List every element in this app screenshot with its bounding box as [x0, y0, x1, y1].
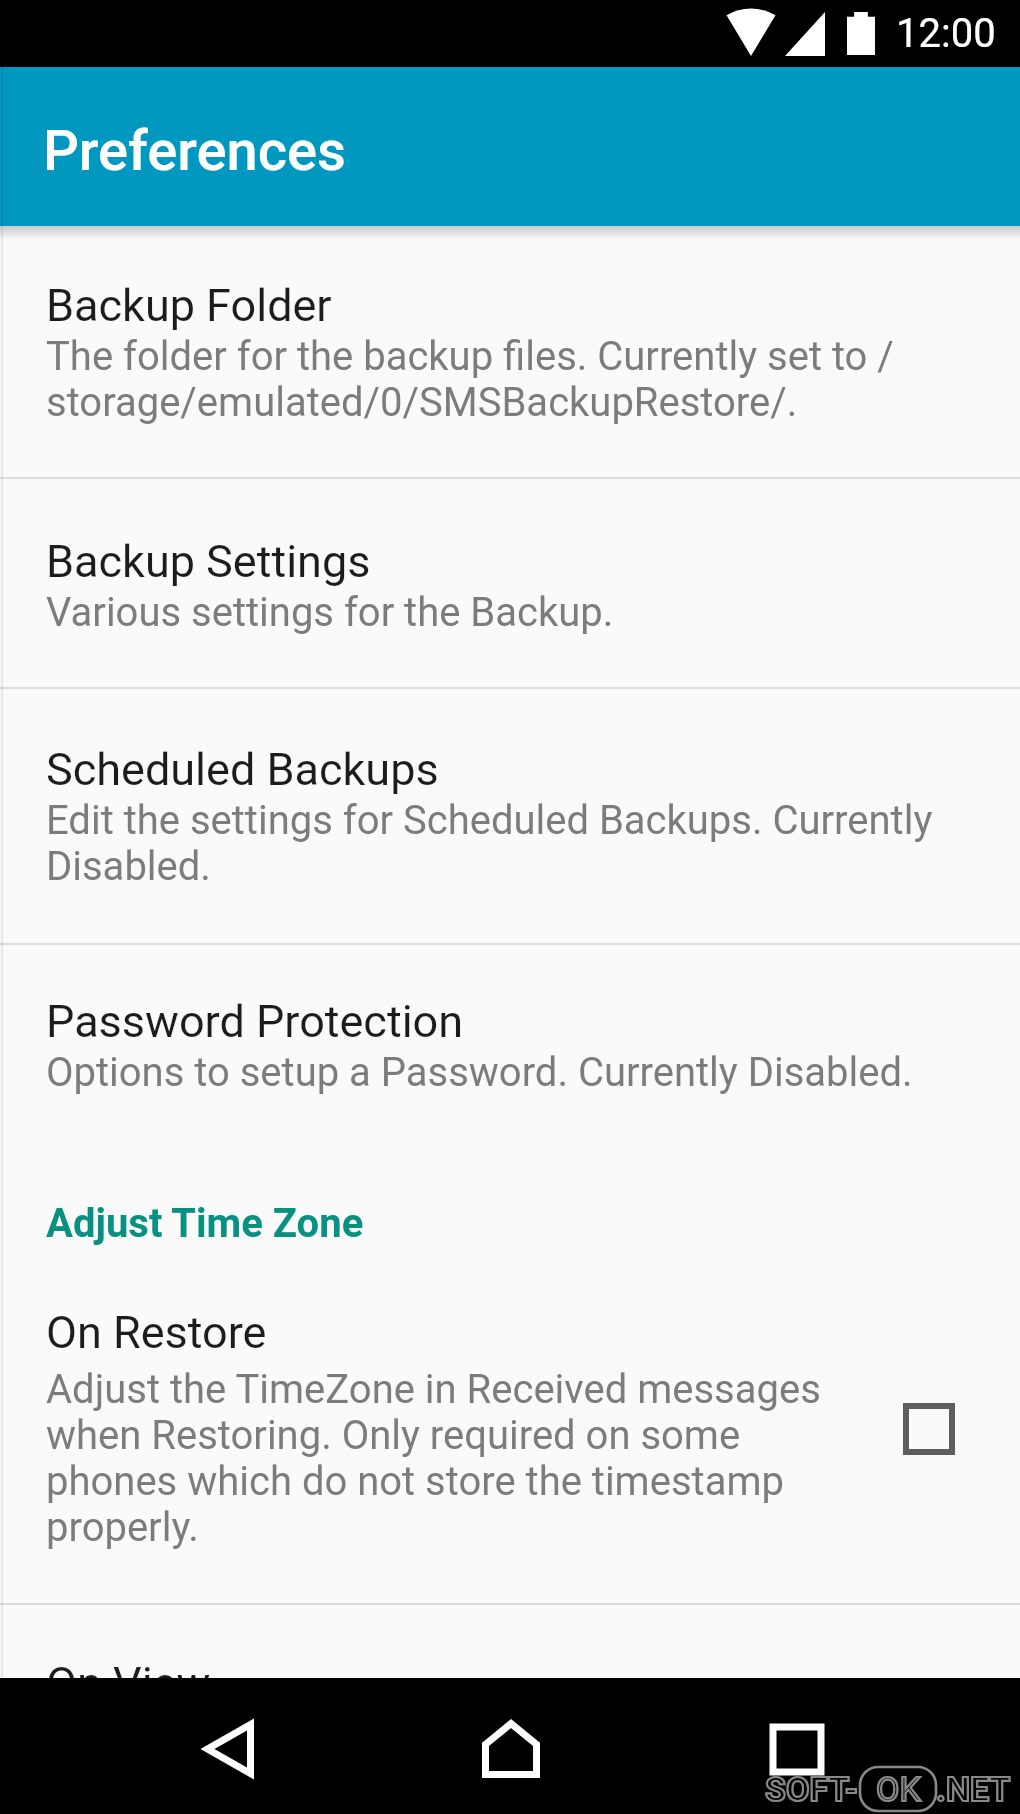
- staticText: Adjust the TimeZone in Received messages…: [46, 1367, 856, 1551]
- button[interactable]: Back: [153, 1678, 305, 1814]
- staticText: The folder for the backup files. Current…: [46, 334, 966, 426]
- button[interactable]: Backup Folder: [0, 226, 1020, 477]
- staticText: On View: [46, 1649, 211, 1678]
- staticText: OK: [876, 1769, 921, 1809]
- staticText: Preferences: [43, 118, 346, 184]
- button[interactable]: On Restore toggle: [889, 1389, 969, 1469]
- staticText: Various settings for the Backup.: [46, 590, 614, 636]
- button[interactable]: Backup Settings: [0, 479, 1020, 687]
- button[interactable]: On Restore: [0, 1271, 1020, 1603]
- staticText: .NET: [936, 1769, 1011, 1809]
- staticText: Scheduled Backups: [46, 735, 439, 798]
- button[interactable]: Home: [435, 1678, 587, 1814]
- button[interactable]: Scheduled Backups: [0, 689, 1020, 943]
- staticText: SOFT-: [765, 1769, 859, 1809]
- staticText: Password Protection: [46, 987, 464, 1050]
- staticText: On Restore: [46, 1298, 267, 1361]
- staticText: Backup Folder: [46, 271, 332, 334]
- staticText: Adjust Time Zone: [46, 1200, 364, 1247]
- button[interactable]: Password Protection: [0, 945, 1020, 1176]
- staticText: Backup Settings: [46, 527, 371, 590]
- staticText: Edit the settings for Scheduled Backups.…: [46, 798, 966, 890]
- staticText: 12:00: [896, 10, 996, 57]
- staticText: Options to setup a Password. Currently D…: [46, 1050, 913, 1096]
- button[interactable]: Recent apps: [721, 1678, 873, 1814]
- button[interactable]: On View: [0, 1605, 1020, 1678]
